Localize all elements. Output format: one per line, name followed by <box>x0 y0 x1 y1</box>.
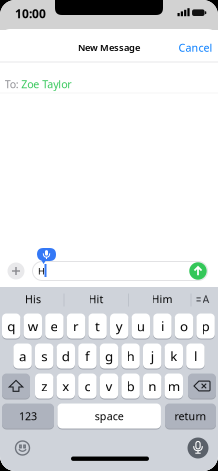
button[interactable]: Shift <box>2 373 30 399</box>
staticText: f <box>85 347 90 365</box>
staticText: r <box>73 317 79 335</box>
staticText: j <box>151 347 154 365</box>
staticText: n <box>148 377 156 395</box>
button[interactable]: j <box>143 343 161 369</box>
staticText: 10:00 <box>15 5 46 21</box>
button[interactable]: h <box>121 343 140 369</box>
button[interactable]: space <box>57 403 161 429</box>
staticText: New Message <box>78 41 140 54</box>
button[interactable]: Zoe Taylor <box>21 77 71 91</box>
button[interactable]: Dictation <box>37 248 56 265</box>
button[interactable]: f <box>78 343 97 369</box>
staticText: v <box>105 377 112 395</box>
staticText: h <box>127 347 135 365</box>
staticText: a <box>19 347 26 365</box>
button[interactable]: Add attachment <box>7 262 24 279</box>
staticText: x <box>62 377 69 395</box>
button[interactable]: s <box>35 343 53 369</box>
staticText: A <box>202 292 209 306</box>
button[interactable]: Send <box>189 262 207 280</box>
button[interactable]: c <box>78 373 97 399</box>
button[interactable]: Predictive input <box>194 289 212 309</box>
button[interactable]: o <box>175 313 193 339</box>
staticText: s <box>41 347 47 365</box>
staticText: Hit <box>88 292 103 306</box>
button[interactable]: v <box>100 373 118 399</box>
button[interactable]: b <box>121 373 140 399</box>
button[interactable]: Dictate <box>187 437 208 458</box>
staticText: i <box>161 317 164 335</box>
button[interactable]: u <box>132 313 150 339</box>
button[interactable]: m <box>165 373 183 399</box>
button[interactable]: l <box>186 343 205 369</box>
button[interactable]: x <box>57 373 75 399</box>
staticText: w <box>28 317 38 335</box>
staticText: To: <box>5 77 19 91</box>
staticText: l <box>194 347 197 365</box>
button[interactable]: y <box>110 313 128 339</box>
staticText: Cancel <box>178 40 212 55</box>
staticText: y <box>116 317 123 335</box>
button[interactable]: n <box>143 373 161 399</box>
button[interactable]: Cancel <box>178 40 212 55</box>
button[interactable]: k <box>165 343 183 369</box>
staticText: His <box>25 292 41 306</box>
button[interactable]: d <box>57 343 75 369</box>
staticText: e <box>50 317 58 335</box>
button[interactable]: Emoji <box>14 440 30 456</box>
staticText: Him <box>151 292 172 306</box>
button[interactable]: r <box>67 313 85 339</box>
staticText: q <box>7 317 15 335</box>
button[interactable]: w <box>24 313 42 339</box>
staticText: b <box>127 377 135 395</box>
button[interactable]: 123 <box>2 403 54 429</box>
button[interactable]: i <box>153 313 172 339</box>
staticText: m <box>168 377 180 395</box>
button[interactable]: z <box>35 373 53 399</box>
staticText: p <box>202 317 210 335</box>
staticText: o <box>180 317 188 335</box>
staticText: space <box>95 409 124 423</box>
button[interactable]: a <box>13 343 32 369</box>
staticText: d <box>62 347 70 365</box>
staticText: t <box>95 317 100 335</box>
button[interactable]: Delete <box>188 373 216 399</box>
button[interactable]: His <box>3 288 63 310</box>
button[interactable]: q <box>2 313 20 339</box>
button[interactable]: Hit <box>66 288 126 310</box>
staticText: return <box>174 409 206 423</box>
button[interactable]: g <box>100 343 118 369</box>
button[interactable]: e <box>45 313 64 339</box>
staticText: 123 <box>19 409 37 423</box>
button[interactable]: t <box>88 313 107 339</box>
staticText: Zoe Taylor <box>21 77 71 91</box>
staticText: c <box>84 377 90 395</box>
staticText: k <box>170 347 177 365</box>
button[interactable]: return <box>165 403 216 429</box>
staticText: H <box>38 265 45 277</box>
staticText: u <box>137 317 145 335</box>
button[interactable]: p <box>196 313 215 339</box>
staticText: g <box>105 347 113 365</box>
button[interactable]: Him <box>134 288 190 310</box>
staticText: z <box>41 377 47 395</box>
